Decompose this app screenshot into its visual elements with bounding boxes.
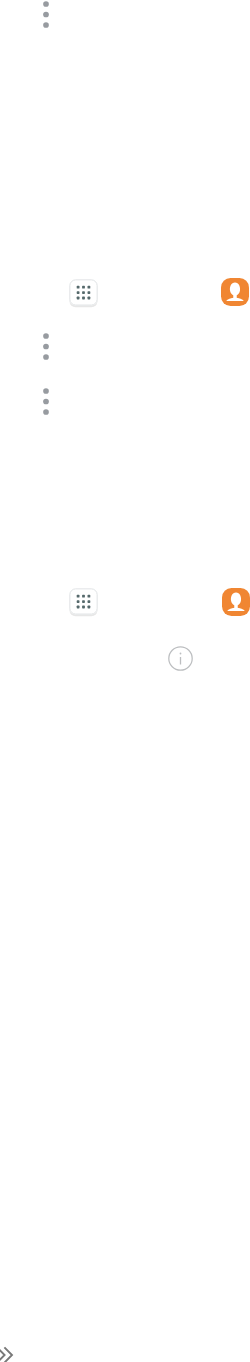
button[interactable]: Apps [69,279,98,307]
button[interactable]: Forward [0,1344,16,1362]
button[interactable]: More options [40,0,52,30]
button[interactable]: More options [40,332,52,362]
button[interactable]: Contacts [222,588,250,616]
button[interactable]: Info [168,646,193,671]
button[interactable]: Contacts [221,278,249,306]
button[interactable]: Apps [69,588,98,616]
button[interactable]: More options [40,387,52,417]
